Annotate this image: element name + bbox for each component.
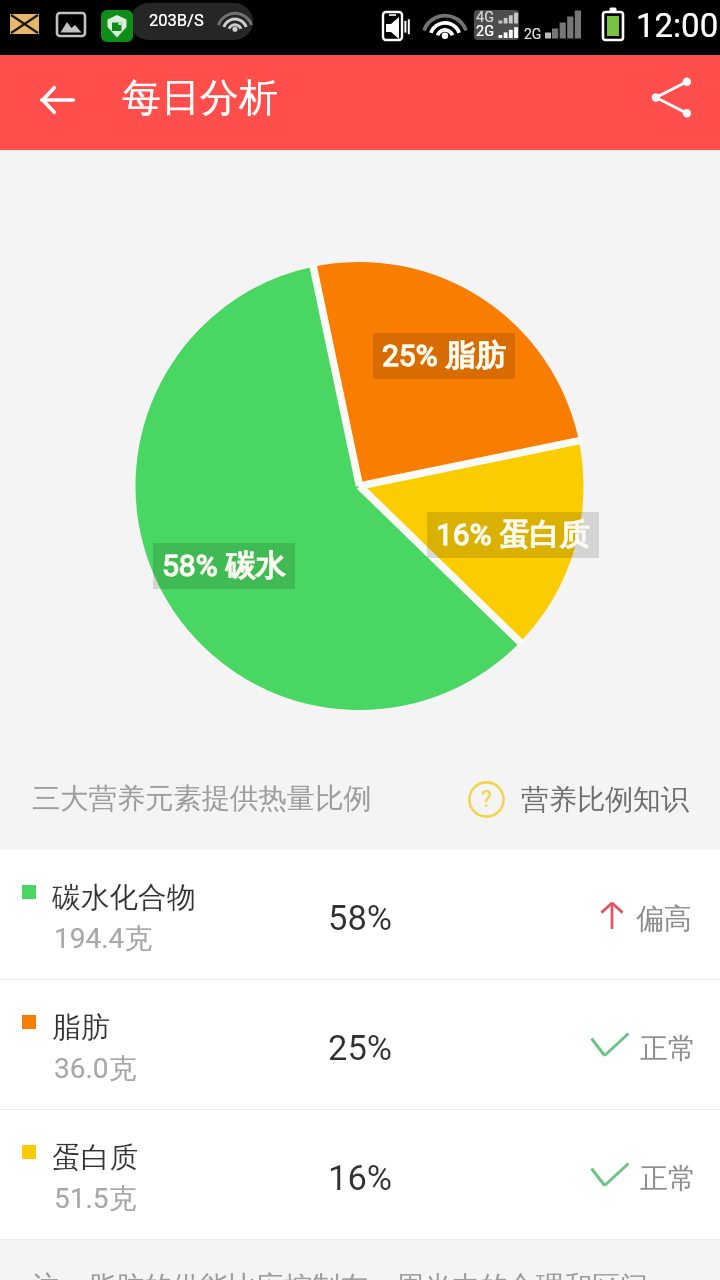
staticText: 36.0克 <box>54 1051 137 1086</box>
button[interactable]: ? <box>468 781 689 818</box>
staticText: 三大营养元素提供热量比例 <box>32 781 372 817</box>
button[interactable]: 碳水化合物 <box>0 850 720 979</box>
button[interactable]: 蛋白质 <box>0 1110 720 1239</box>
staticText: 2G <box>524 26 542 42</box>
staticText: 碳水化合物 <box>52 879 196 915</box>
staticText: 营养比例知识 <box>521 782 689 817</box>
staticText: 偏高 <box>636 901 692 936</box>
staticText: 4G <box>476 9 495 26</box>
staticText: 12:00 <box>636 6 719 45</box>
staticText: 正常 <box>640 1031 696 1066</box>
staticText: 25% 脂肪 <box>382 337 506 375</box>
staticText: 蛋白质 <box>52 1139 139 1175</box>
staticText: 脂肪 <box>52 1009 110 1045</box>
staticText: 正常 <box>640 1161 696 1196</box>
staticText: ? <box>481 786 492 813</box>
staticText: 194.4克 <box>54 921 153 956</box>
staticText: 58% 碳水 <box>162 547 286 585</box>
staticText: 51.5克 <box>54 1181 137 1216</box>
staticText: 2G <box>476 23 495 40</box>
staticText: 每日分析 <box>122 73 278 122</box>
staticText: 203B/S <box>149 11 204 30</box>
staticText: 25% <box>328 1028 393 1068</box>
staticText: 注：脂肪的供能比应控制在一周当中的合理和区间 <box>32 1269 648 1280</box>
button[interactable]: 脂肪 <box>0 980 720 1109</box>
button[interactable]: Back <box>29 72 85 128</box>
staticText: 16% 蛋白质 <box>436 516 590 554</box>
staticText: 58% <box>328 898 393 938</box>
staticText: 16% <box>328 1158 393 1198</box>
button[interactable]: Share <box>644 69 700 125</box>
